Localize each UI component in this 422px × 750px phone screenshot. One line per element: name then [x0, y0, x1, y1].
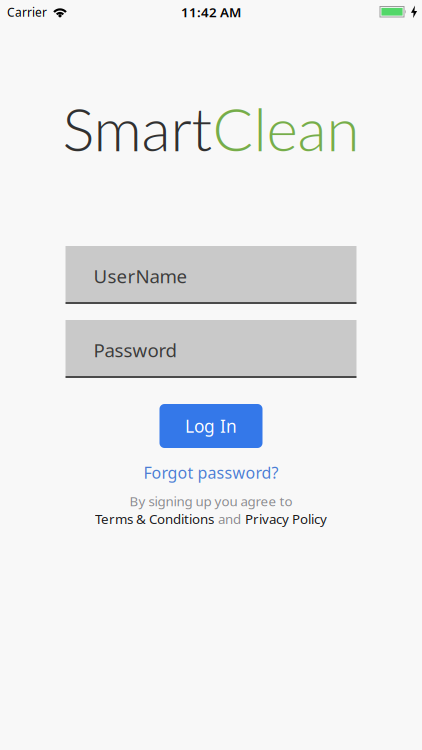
- staticText: 11:42 AM: [181, 3, 241, 21]
- button[interactable]: Terms & Conditions: [95, 510, 214, 528]
- button[interactable]: Privacy Policy: [245, 510, 327, 528]
- staticText: Privacy Policy: [245, 510, 327, 528]
- staticText: Terms & Conditions: [95, 510, 214, 528]
- staticText: Clean: [212, 92, 359, 164]
- button[interactable]: UserName: [65, 246, 356, 304]
- staticText: By signing up you agree to: [129, 492, 292, 510]
- staticText: Log In: [185, 414, 237, 437]
- button[interactable]: Log In: [159, 404, 262, 448]
- staticText: Password: [93, 338, 176, 362]
- staticText: Smart: [62, 92, 212, 164]
- staticText: Forgot password?: [143, 462, 278, 483]
- staticText: UserName: [93, 264, 187, 288]
- staticText: Carrier: [7, 4, 47, 20]
- button[interactable]: Forgot password?: [143, 462, 278, 483]
- button[interactable]: Password: [65, 320, 356, 378]
- staticText: and: [218, 510, 241, 528]
